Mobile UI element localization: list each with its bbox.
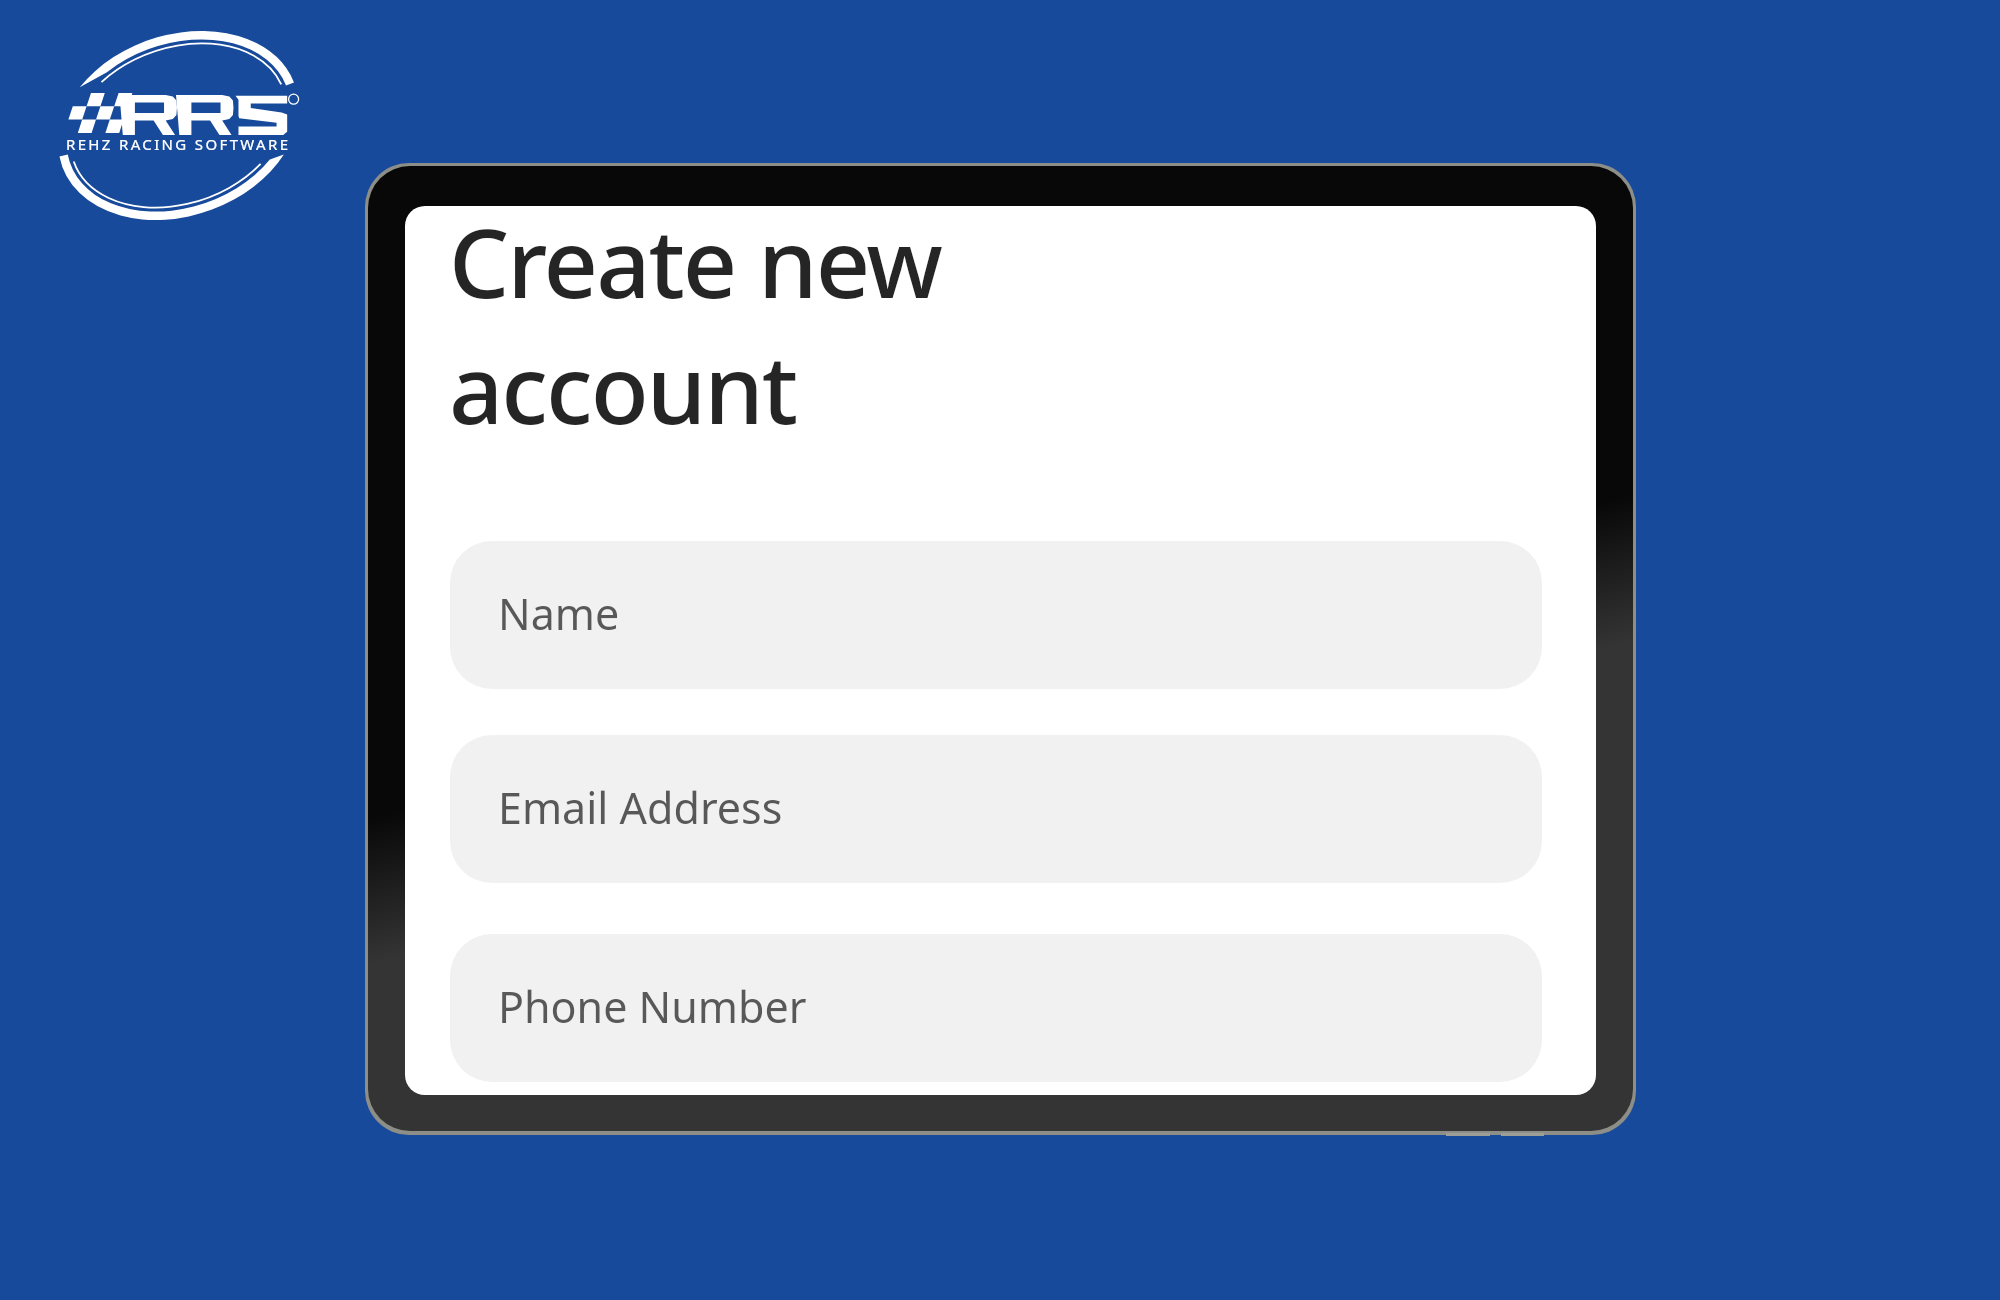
staticText: REHZ RACING SOFTWARE <box>66 134 291 154</box>
other: RRS Rehz Racing Software logo <box>40 20 320 240</box>
staticText: Phone Number <box>498 977 807 1036</box>
button[interactable]: Phone Number <box>450 934 1542 1082</box>
staticText: Name <box>498 584 620 643</box>
button[interactable]: Name <box>450 541 1542 689</box>
staticText: Create new account <box>449 206 941 452</box>
button[interactable]: Email Address <box>450 735 1542 883</box>
staticText: Email Address <box>498 778 783 837</box>
